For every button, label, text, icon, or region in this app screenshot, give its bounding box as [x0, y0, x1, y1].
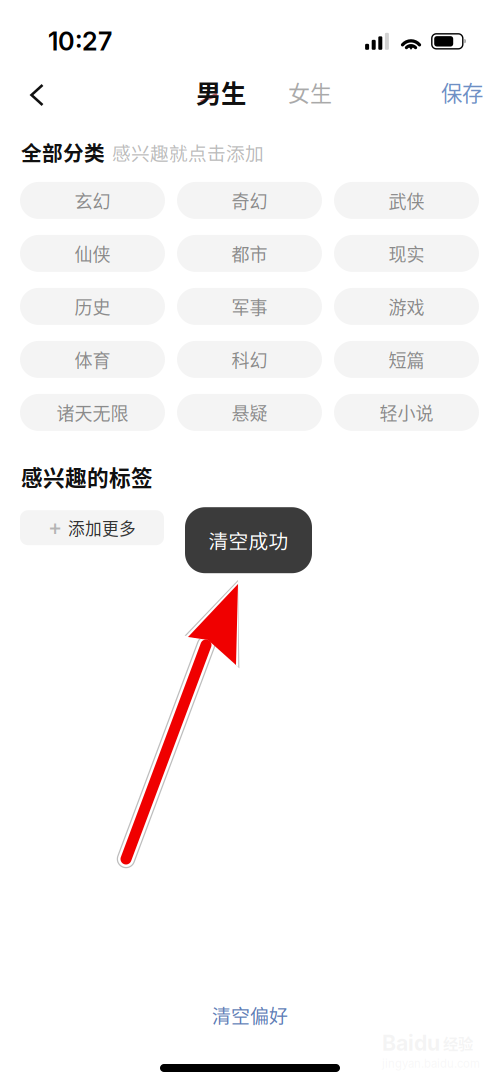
- button[interactable]: 玄幻: [20, 182, 165, 219]
- staticText: 诸天无限: [56, 399, 128, 425]
- staticText: 10:27: [48, 26, 112, 57]
- staticText: 经验: [443, 1032, 473, 1054]
- button[interactable]: 男生: [196, 69, 246, 115]
- button[interactable]: 悬疑: [177, 394, 322, 431]
- button[interactable]: 奇幻: [177, 182, 322, 219]
- staticText: 历史: [74, 293, 110, 319]
- staticText: 游戏: [388, 293, 424, 319]
- button[interactable]: 仙侠: [20, 235, 165, 272]
- button[interactable]: 科幻: [177, 341, 322, 378]
- staticText: 全部分类: [21, 137, 105, 167]
- staticText: 短篇: [388, 346, 424, 372]
- button[interactable]: +: [20, 507, 164, 545]
- button[interactable]: 短篇: [334, 341, 479, 378]
- button[interactable]: 武侠: [334, 182, 479, 219]
- button[interactable]: 体育: [20, 341, 165, 378]
- staticText: 男生: [196, 74, 246, 110]
- button[interactable]: 都市: [177, 235, 322, 272]
- button[interactable]: 女生: [288, 69, 332, 115]
- staticText: 感兴趣就点击添加: [112, 139, 264, 166]
- button[interactable]: 现实: [334, 235, 479, 272]
- staticText: 体育: [74, 346, 110, 372]
- staticText: 仙侠: [74, 240, 110, 266]
- staticText: 清空偏好: [212, 1002, 288, 1029]
- button[interactable]: Back: [0, 69, 68, 115]
- staticText: 军事: [231, 293, 267, 319]
- staticText: 清空成功: [208, 526, 288, 554]
- staticText: 玄幻: [74, 187, 110, 213]
- staticText: 女生: [288, 76, 332, 108]
- staticText: 科幻: [231, 346, 267, 372]
- staticText: 感兴趣的标签: [21, 461, 153, 492]
- staticText: +: [48, 515, 62, 541]
- staticText: 武侠: [388, 187, 424, 213]
- staticText: 现实: [388, 240, 424, 266]
- staticText: 悬疑: [231, 399, 267, 425]
- staticText: 轻小说: [379, 399, 433, 425]
- button[interactable]: 诸天无限: [20, 394, 165, 431]
- button[interactable]: 轻小说: [334, 394, 479, 431]
- staticText: 奇幻: [231, 187, 267, 213]
- button[interactable]: 清空偏好: [0, 992, 500, 1039]
- staticText: 添加更多: [68, 516, 136, 540]
- button[interactable]: 保存: [441, 69, 500, 115]
- button[interactable]: 历史: [20, 288, 165, 325]
- button[interactable]: 军事: [177, 288, 322, 325]
- button[interactable]: 游戏: [334, 288, 479, 325]
- staticText: 都市: [231, 240, 267, 266]
- staticText: Baidu: [382, 1030, 440, 1056]
- staticText: 保存: [441, 77, 483, 107]
